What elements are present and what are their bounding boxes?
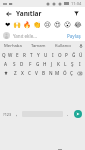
staticText: O: [58, 52, 62, 58]
staticText: Yanıtlar: [16, 9, 42, 18]
staticText: J: [51, 61, 53, 67]
button[interactable]: Filtrele: [72, 9, 81, 18]
staticText: T: [30, 52, 33, 58]
button[interactable]: B: [40, 69, 47, 77]
button[interactable]: T: [28, 51, 35, 59]
staticText: 😍: [54, 21, 61, 29]
button[interactable]: Tamam: [26, 41, 51, 50]
button[interactable]: R: [21, 51, 28, 59]
button[interactable]: .: [64, 110, 72, 118]
button[interactable]: 🙌: [13, 20, 22, 29]
staticText: Kullanıcı: [55, 43, 72, 49]
button[interactable]: U: [42, 51, 49, 59]
staticText: S: [13, 61, 16, 67]
button[interactable]: 😮: [63, 20, 72, 29]
button[interactable]: G: [34, 60, 41, 68]
button[interactable]: Ö: [61, 69, 68, 77]
staticText: Q: [2, 52, 6, 58]
staticText: Y: [37, 52, 40, 58]
button[interactable]: M: [54, 69, 61, 77]
staticText: P: [65, 52, 68, 58]
staticText: Z: [14, 70, 17, 76]
staticText: E: [16, 52, 19, 58]
button[interactable]: Sil: [75, 69, 84, 77]
staticText: B: [42, 70, 46, 76]
button[interactable]: Z: [11, 69, 19, 77]
button[interactable]: 😂: [73, 20, 82, 29]
button[interactable]: C: [26, 69, 33, 77]
button[interactable]: ?123: [1, 110, 13, 118]
button[interactable]: X: [19, 69, 26, 77]
button[interactable]: E: [14, 51, 21, 59]
button[interactable]: S: [10, 60, 18, 68]
staticText: U: [44, 52, 48, 58]
staticText: M: [55, 70, 60, 76]
button[interactable]: Shift: [1, 69, 11, 77]
staticText: Ç: [70, 70, 73, 76]
button[interactable]: Ğ: [70, 51, 77, 59]
button[interactable]: Sesle yaz: [76, 41, 85, 50]
button[interactable]: 😍: [53, 20, 62, 29]
button[interactable]: 😢: [43, 20, 52, 29]
staticText: D: [20, 61, 24, 67]
button[interactable]: ,: [13, 110, 21, 118]
staticText: 🔥: [23, 21, 32, 29]
staticText: 😮: [64, 21, 71, 29]
staticText: Merhaba: [4, 43, 22, 49]
button[interactable]: Gönder: [74, 110, 82, 118]
staticText: Ö: [63, 70, 67, 76]
button[interactable]: Geri: [4, 9, 13, 18]
button[interactable]: I: [76, 60, 83, 68]
staticText: I: [52, 52, 54, 58]
staticText: I: [79, 61, 81, 67]
button[interactable]: V: [33, 69, 40, 77]
button[interactable]: Ş: [69, 60, 76, 68]
button[interactable]: Y: [35, 51, 42, 59]
staticText: K: [57, 61, 60, 67]
staticText: Ü: [79, 52, 83, 58]
button[interactable]: Paylaş: [66, 33, 82, 39]
button[interactable]: N: [47, 69, 54, 77]
button[interactable]: P: [63, 51, 70, 59]
staticText: 😂: [74, 21, 82, 29]
staticText: H: [43, 61, 47, 67]
button[interactable]: Q: [1, 51, 7, 59]
staticText: 11:04: [71, 1, 82, 6]
button[interactable]: Yanıt ekle...: [13, 33, 66, 39]
staticText: 👏: [33, 21, 42, 29]
staticText: F: [29, 61, 32, 67]
button[interactable]: A: [2, 60, 10, 68]
button[interactable]: Ü: [77, 51, 84, 59]
button[interactable]: 👏: [33, 20, 42, 29]
button[interactable]: I: [49, 51, 56, 59]
staticText: Paylaş: [67, 33, 81, 39]
staticText: A: [4, 61, 8, 67]
button[interactable]: 🔥: [23, 20, 32, 29]
staticText: Ş: [71, 61, 74, 67]
button[interactable]: Ç: [68, 69, 75, 77]
button[interactable]: D: [18, 60, 26, 68]
button[interactable]: ❤️: [3, 20, 12, 29]
button[interactable]: H: [41, 60, 48, 68]
staticText: ,: [16, 111, 18, 117]
button[interactable]: J: [48, 60, 55, 68]
button[interactable]: K: [55, 60, 62, 68]
button[interactable]: Kullanıcı: [51, 41, 76, 50]
button[interactable]: O: [56, 51, 63, 59]
button[interactable]: F: [26, 60, 34, 68]
staticText: N: [49, 70, 53, 76]
staticText: C: [28, 70, 31, 76]
staticText: 🙌: [13, 21, 22, 29]
staticText: Ğ: [72, 52, 76, 58]
staticText: R: [23, 52, 26, 58]
staticText: ❤️: [5, 21, 11, 29]
button[interactable]: L: [62, 60, 69, 68]
button[interactable]: W: [7, 51, 14, 59]
staticText: Yanıt ekle...: [13, 33, 37, 39]
staticText: G: [36, 61, 40, 67]
staticText: W: [8, 52, 13, 58]
button[interactable]: Merhaba: [0, 41, 26, 50]
staticText: ?123: [3, 112, 12, 117]
staticText: .: [67, 111, 69, 117]
